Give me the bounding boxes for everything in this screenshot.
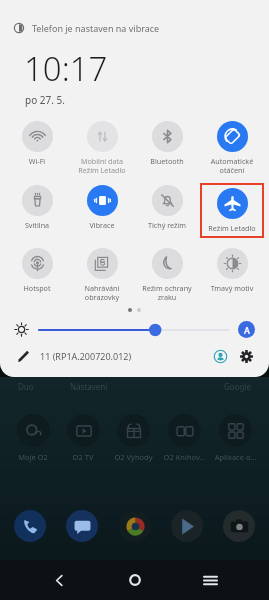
button[interactable]: Bluetooth: [135, 119, 199, 166]
button[interactable]: [66, 510, 98, 542]
staticText: Moje O2: [8, 452, 58, 462]
button[interactable]: Poslední aplikace: [197, 567, 223, 593]
staticText: Režim ochrany zraku: [135, 283, 199, 302]
staticText: O2 Knihov…: [159, 452, 210, 462]
button[interactable]: Uživatel: [211, 347, 229, 365]
button[interactable]: Plocha: [122, 567, 148, 593]
button[interactable]: Režim ochrany zraku: [135, 246, 199, 302]
button[interactable]: [223, 510, 255, 542]
button[interactable]: Moje O2: [8, 414, 58, 462]
button[interactable]: Tichý režim: [135, 183, 199, 230]
button[interactable]: Aplikace o…: [210, 414, 261, 462]
staticText: Tmavý motiv: [200, 283, 264, 293]
button[interactable]: O2 Výhody: [108, 414, 159, 462]
staticText: Vibrace: [70, 220, 134, 230]
staticText: O2 Výhody: [108, 452, 159, 462]
button[interactable]: [14, 510, 46, 542]
button[interactable]: Nastavení: [237, 347, 255, 365]
button[interactable]: Mobilní data Režim Letadlo: [70, 119, 134, 175]
button[interactable]: [171, 510, 203, 542]
staticText: 11 (RP1A.200720.012): [40, 350, 132, 362]
button[interactable]: Režim Letadlo: [202, 185, 262, 236]
button[interactable]: Automatický jas: [238, 321, 255, 338]
staticText: Automatické otáčení: [200, 156, 264, 175]
button[interactable]: Tmavý motiv: [200, 246, 264, 293]
button[interactable]: Vibrace: [70, 183, 134, 230]
staticText: 10:17: [24, 46, 108, 91]
button[interactable]: O2 Knihov…: [159, 414, 210, 462]
button[interactable]: [119, 510, 151, 542]
button[interactable]: Nahrávání obrazovky: [70, 246, 134, 302]
staticText: Mobilní data Režim Letadlo: [70, 156, 134, 175]
button[interactable]: Automatické otáčení: [200, 119, 264, 175]
staticText: po 27. 5.: [25, 93, 65, 107]
staticText: Google: [224, 381, 251, 392]
button[interactable]: Upravit: [14, 347, 32, 365]
staticText: Telefon je nastaven na vibrace: [32, 22, 160, 34]
staticText: Nastavení: [70, 381, 108, 392]
staticText: Svítilna: [5, 220, 69, 230]
staticText: O2 TV: [58, 452, 108, 462]
staticText: Aplikace o…: [210, 452, 261, 462]
button[interactable]: Zpět: [46, 567, 72, 593]
staticText: Hotspot: [5, 283, 69, 293]
staticText: A: [244, 324, 250, 336]
staticText: Tichý režim: [135, 220, 199, 230]
button[interactable]: Svítilna: [5, 183, 69, 230]
staticText: Nahrávání obrazovky: [70, 283, 134, 302]
button[interactable]: O2 TV: [58, 414, 108, 462]
staticText: Režim Letadlo: [202, 223, 262, 233]
staticText: Wi-Fi: [5, 156, 69, 166]
button[interactable]: Hotspot: [5, 246, 69, 293]
button[interactable]: Wi-Fi: [5, 119, 69, 166]
staticText: Duo: [18, 381, 34, 392]
staticText: Bluetooth: [135, 156, 199, 166]
